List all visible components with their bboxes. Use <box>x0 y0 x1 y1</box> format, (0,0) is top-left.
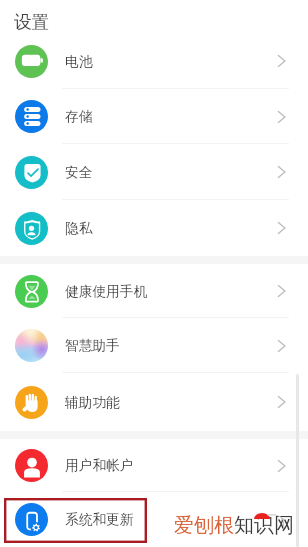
staticText: 隐私 <box>65 220 93 237</box>
staticText: 电池 <box>65 53 93 70</box>
staticText: 安全 <box>65 164 93 181</box>
staticText: 智慧助手 <box>65 337 120 354</box>
button[interactable]: 隐私 <box>0 200 308 256</box>
button[interactable]: 健康使用手机 <box>0 264 308 318</box>
staticText: 知识网 <box>234 513 294 538</box>
staticText: 系统和更新 <box>65 511 134 528</box>
staticText: 用户和帐户 <box>65 457 134 474</box>
button[interactable]: 系统和更新 <box>0 492 308 547</box>
staticText: 健康使用手机 <box>65 283 148 300</box>
button[interactable]: 用户和帐户 <box>0 439 308 492</box>
button[interactable]: 安全 <box>0 144 308 200</box>
button[interactable]: 辅助功能 <box>0 373 308 431</box>
button[interactable]: 电池 <box>0 33 308 89</box>
staticText: 存储 <box>65 108 93 125</box>
staticText: 设置 <box>14 11 49 33</box>
staticText: 辅助功能 <box>65 394 120 411</box>
button[interactable]: 存储 <box>0 89 308 144</box>
staticText: 爱刨根 <box>174 513 234 538</box>
button[interactable]: 智慧助手 <box>0 318 308 373</box>
